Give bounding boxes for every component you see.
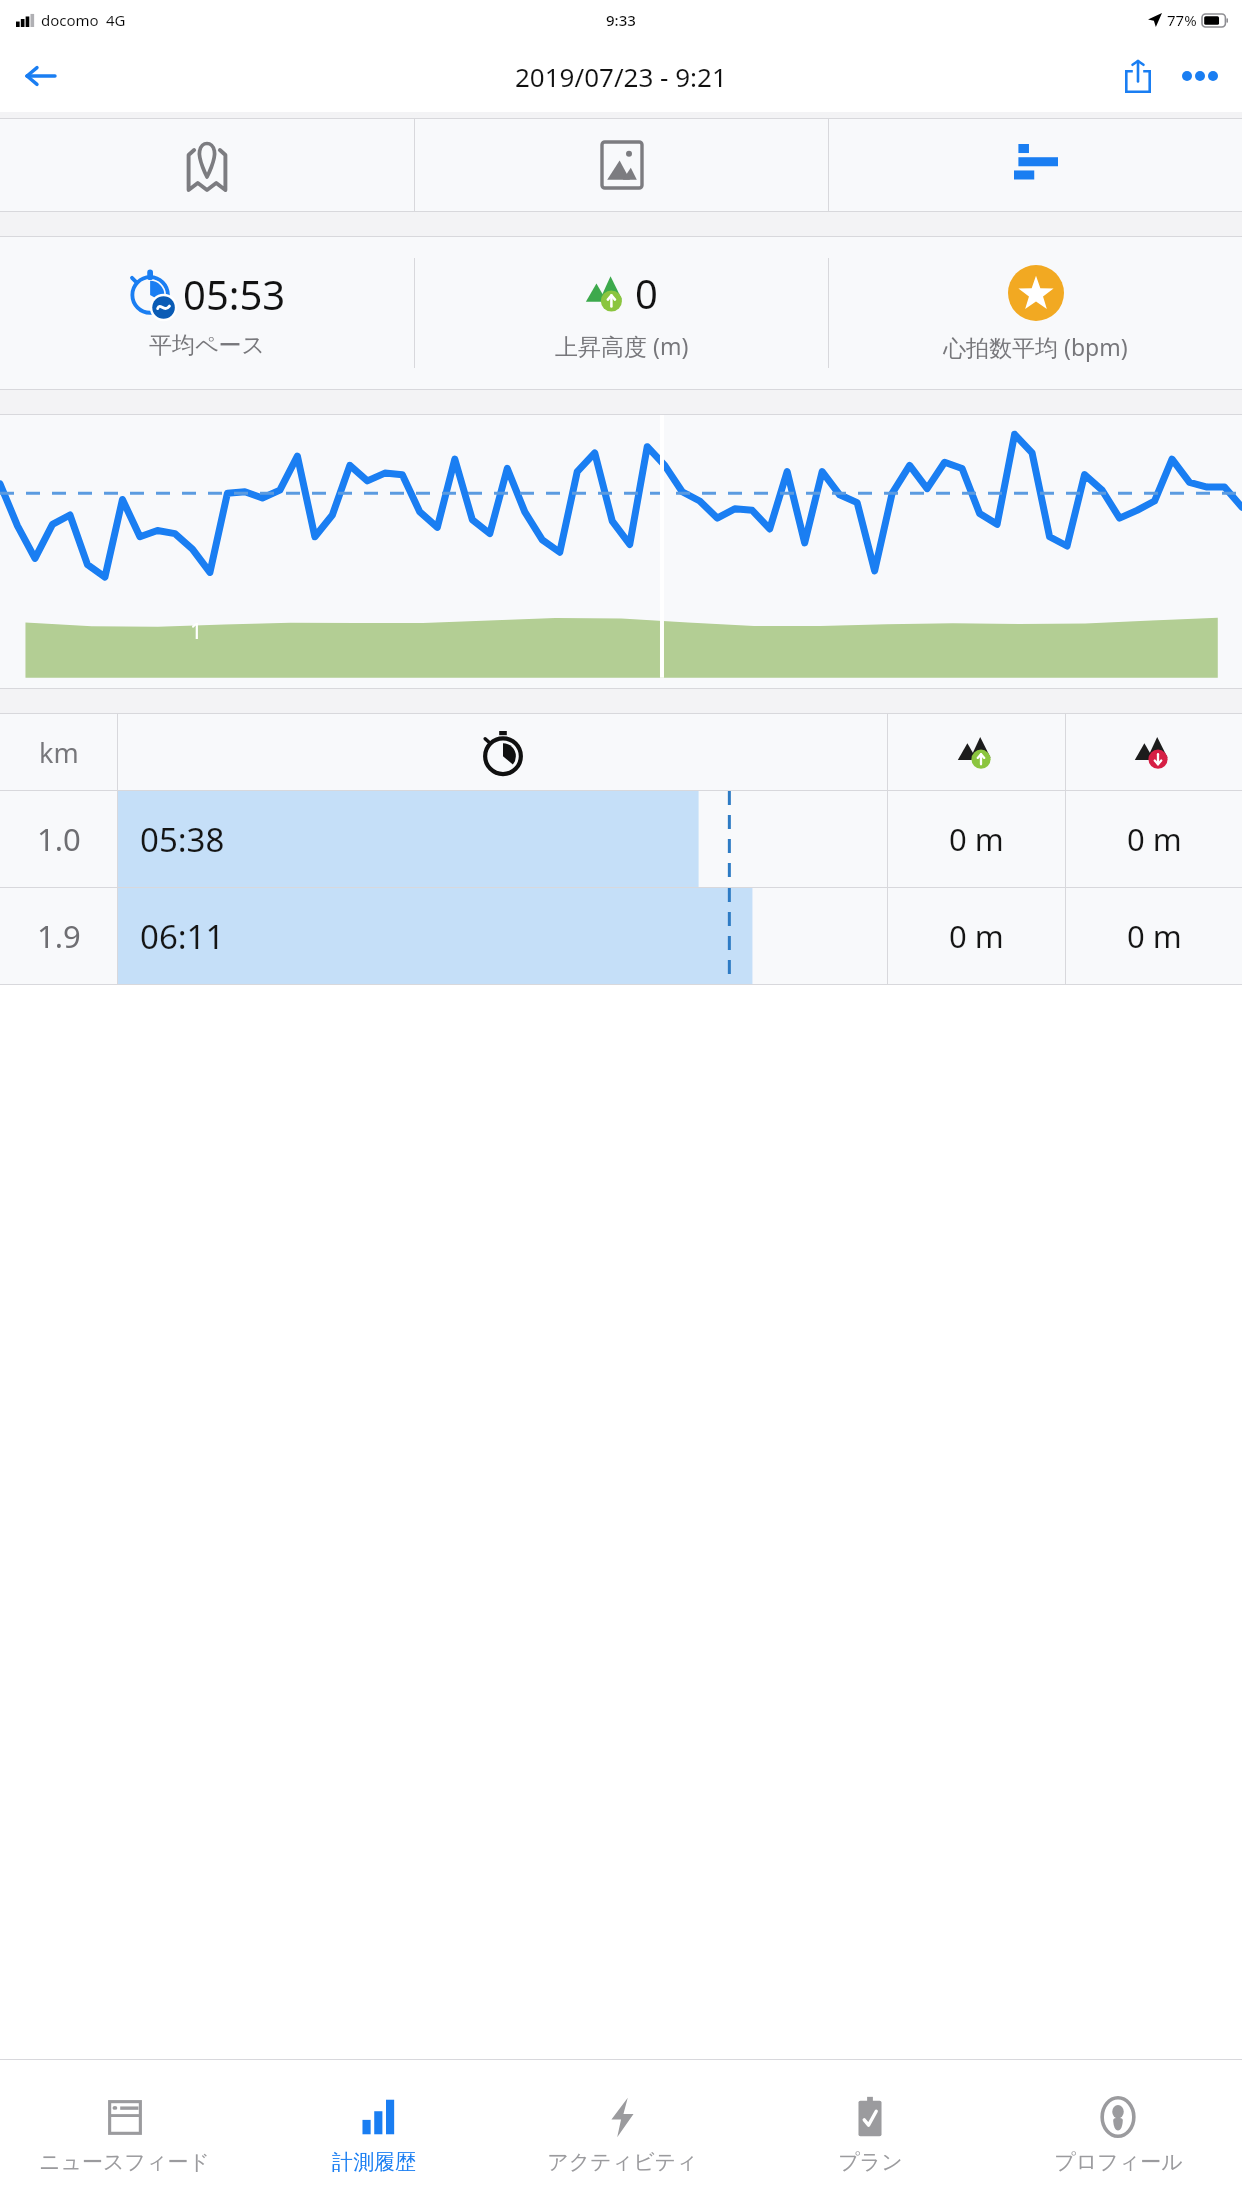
staticText: 0 m xyxy=(949,915,1004,957)
button[interactable]: Map xyxy=(0,119,414,211)
button[interactable]: ニュースフィード xyxy=(0,2060,249,2208)
staticText: 05:53 xyxy=(183,267,286,321)
staticText: ニュースフィード xyxy=(39,2149,210,2175)
staticText: 心拍数平均 (bpm) xyxy=(943,331,1128,362)
staticText: 0 m xyxy=(949,818,1004,860)
staticText: 4G xyxy=(106,10,126,30)
staticText: 0 xyxy=(635,266,658,320)
staticText: 77% xyxy=(1167,10,1197,30)
staticText: 平均ペース xyxy=(149,331,266,360)
staticText: 05:38 xyxy=(140,817,225,862)
button[interactable]: 0 xyxy=(415,237,828,389)
staticText: km xyxy=(39,734,79,771)
staticText: 0 m xyxy=(1127,915,1182,957)
button[interactable]: アクティビティ xyxy=(498,2060,746,2208)
staticText: 1.9 xyxy=(37,915,81,957)
staticText: アクティビティ xyxy=(547,2149,698,2175)
staticText: 計測履歴 xyxy=(332,2149,416,2175)
staticText: 2019/07/23 - 9:21 xyxy=(515,59,727,94)
button[interactable]: 05:53 xyxy=(0,237,414,389)
staticText: docomo xyxy=(41,10,99,30)
button[interactable]: プロフィール xyxy=(994,2060,1242,2208)
staticText: 06:11 xyxy=(140,914,225,959)
staticText: 1 xyxy=(190,615,203,645)
staticText: プロフィール xyxy=(1054,2149,1183,2175)
button[interactable]: 1.0 xyxy=(0,791,1242,887)
button[interactable]: 1.9 xyxy=(0,888,1242,984)
button[interactable]: プラン xyxy=(746,2060,994,2208)
button[interactable]: 計測履歴 xyxy=(249,2060,498,2208)
button[interactable]: Details xyxy=(829,119,1242,211)
button[interactable]: More options xyxy=(1168,44,1232,108)
staticText: プラン xyxy=(838,2149,903,2175)
staticText: 1.0 xyxy=(37,818,81,860)
staticText: 9:33 xyxy=(606,10,636,30)
staticText: 上昇高度 (m) xyxy=(555,330,689,361)
button[interactable]: Back xyxy=(14,50,66,102)
staticText: 0 m xyxy=(1127,818,1182,860)
button[interactable]: Photos xyxy=(415,119,828,211)
button[interactable]: Share xyxy=(1108,46,1168,106)
button[interactable]: 心拍数平均 (bpm) xyxy=(829,237,1242,389)
